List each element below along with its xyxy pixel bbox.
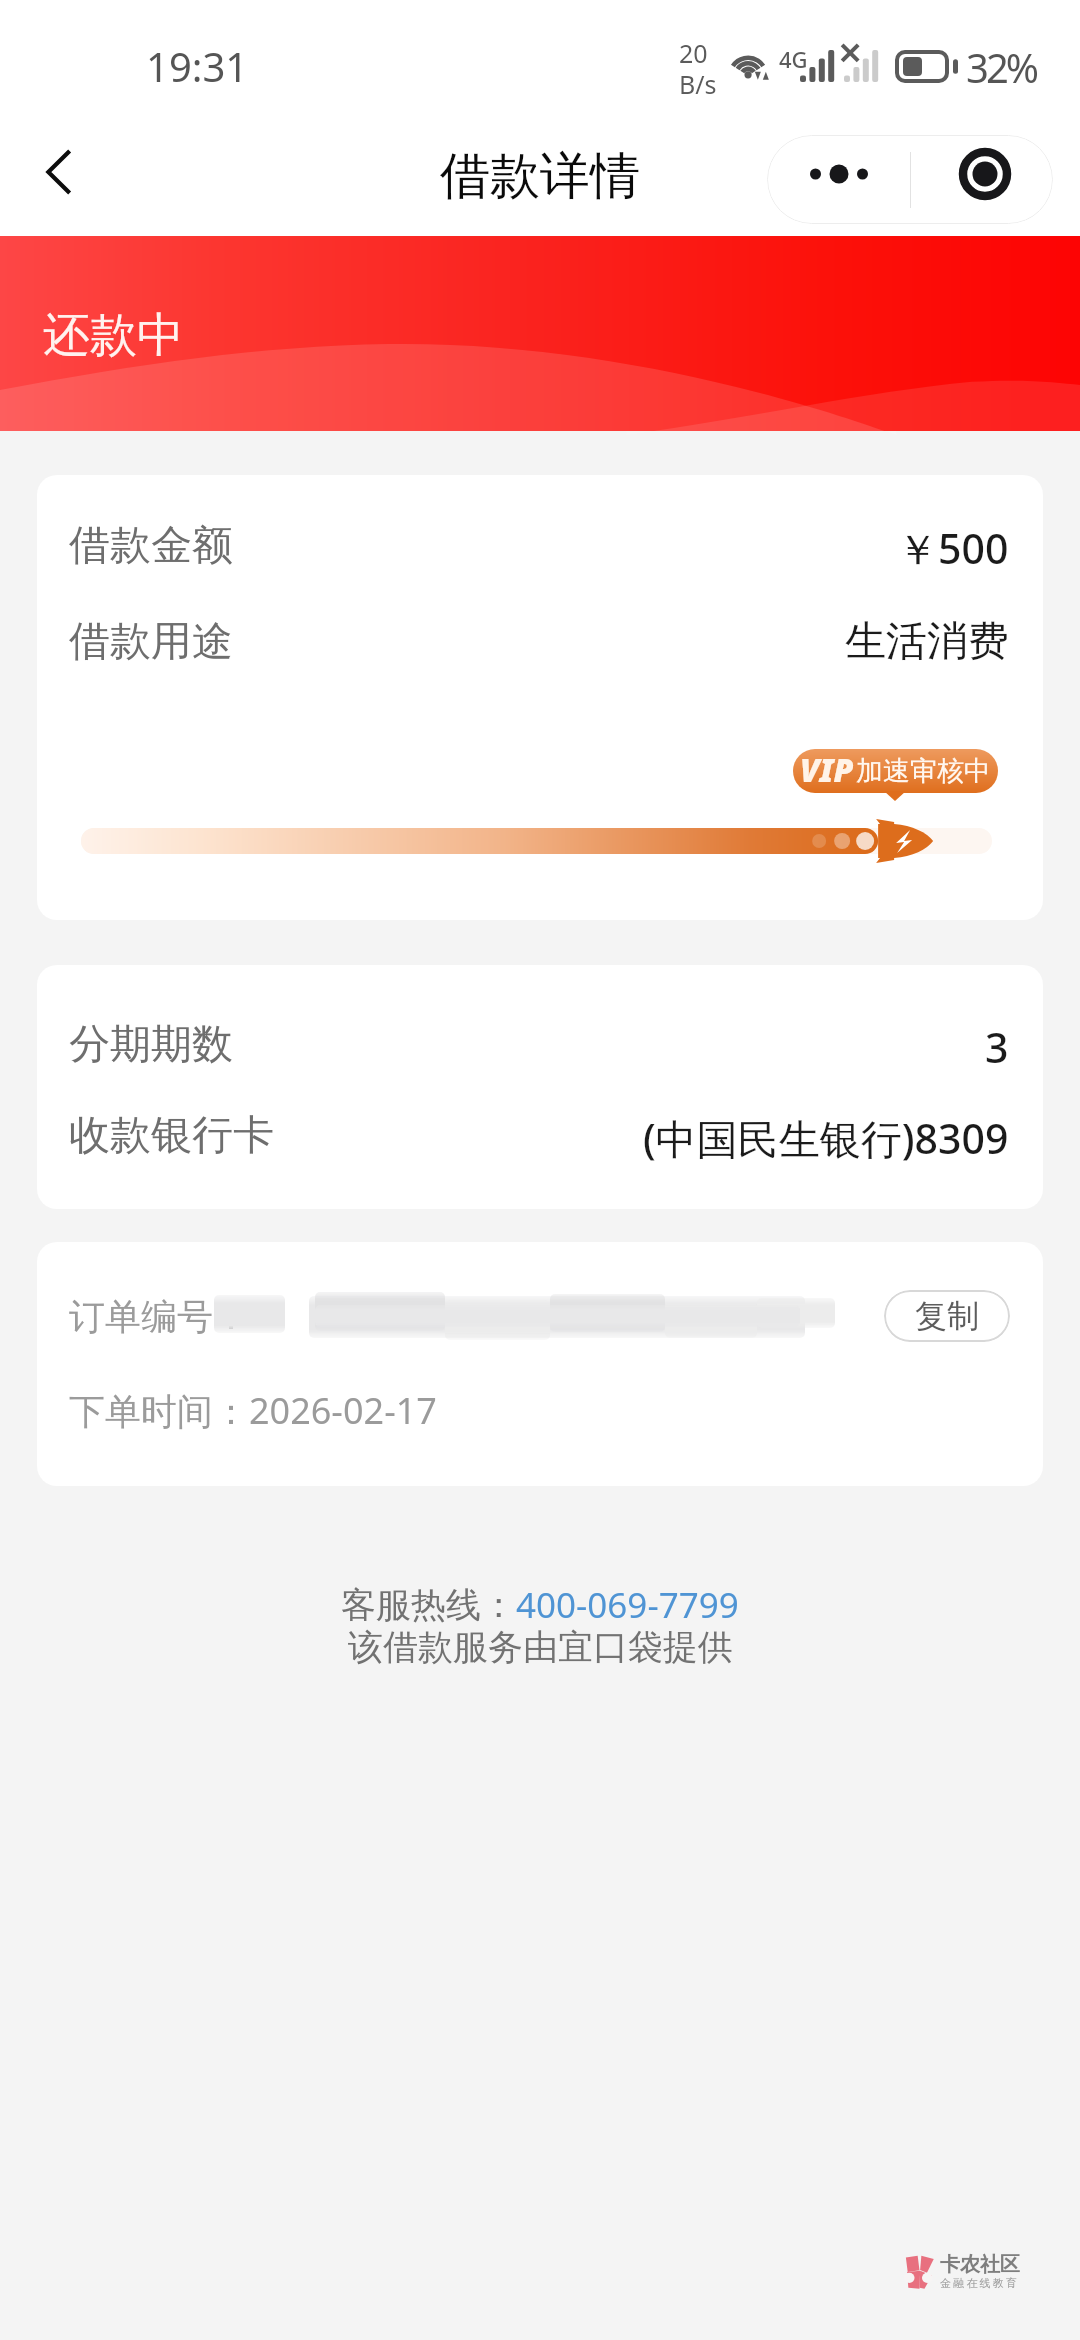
staticText: 订单编号：: [69, 1294, 249, 1339]
staticText: 4G: [779, 44, 808, 74]
staticText: 加速审核中: [856, 754, 991, 788]
button[interactable]: 复制: [884, 1290, 1010, 1342]
staticText: 分期期数: [69, 1019, 233, 1071]
staticText: ￥500: [897, 520, 1009, 572]
staticText: 金融在线教育: [940, 2276, 1020, 2290]
staticText: 19:31: [146, 39, 249, 93]
staticText: (中国民生银行)8309: [643, 1110, 1009, 1162]
staticText: 还款中: [43, 306, 184, 365]
staticText: 借款金额: [69, 520, 233, 572]
staticText: 借款详情: [440, 145, 640, 208]
staticText: 该借款服务由宜口袋提供: [348, 1625, 733, 1669]
staticText: VIP: [800, 749, 854, 792]
staticText: 复制: [915, 1296, 979, 1336]
staticText: 生活消费: [845, 616, 1009, 668]
button[interactable]: 400-069-7799: [516, 1581, 739, 1629]
staticText: 下单时间：2026-02-17: [69, 1386, 437, 1435]
staticText: 客服热线：: [341, 1583, 516, 1627]
staticText: B/s: [679, 67, 717, 101]
button[interactable]: Back: [16, 131, 106, 221]
staticText: 借款用途: [69, 616, 233, 668]
button[interactable]: Menu: [767, 135, 1053, 224]
staticText: 卡农社区: [940, 2252, 1020, 2277]
staticText: 32%: [966, 40, 1036, 94]
staticText: 20: [679, 36, 708, 70]
staticText: 3: [985, 1019, 1009, 1071]
staticText: 收款银行卡: [69, 1110, 274, 1162]
